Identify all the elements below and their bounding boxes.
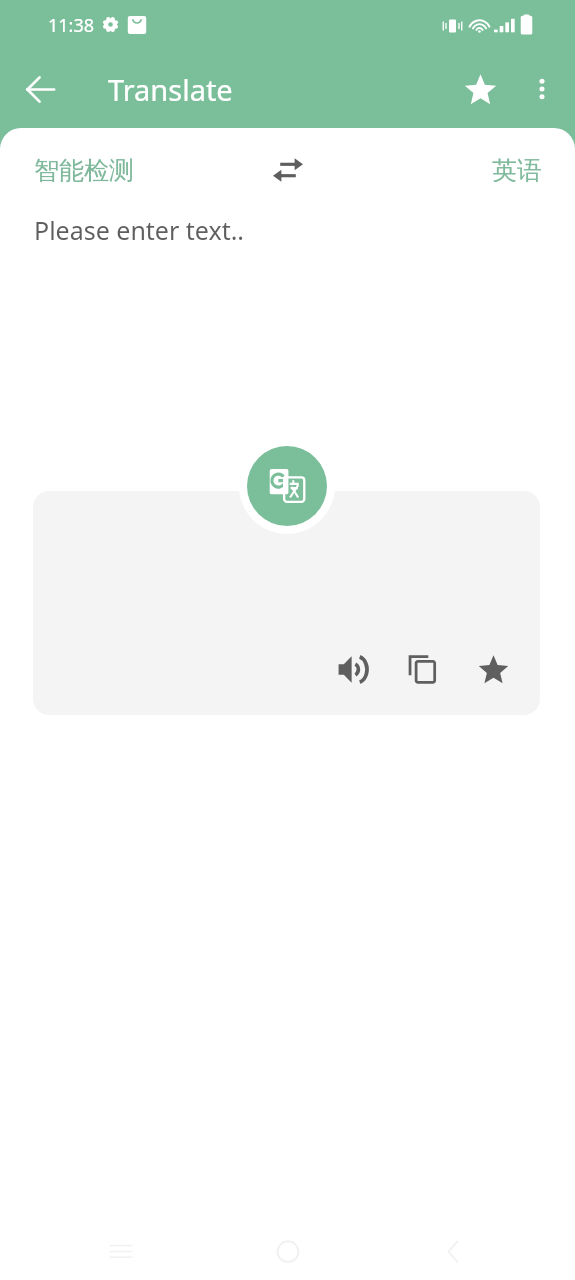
button[interactable]: Copy: [402, 649, 442, 689]
button[interactable]: Swap languages: [265, 147, 311, 193]
button[interactable]: Please enter text..: [16, 204, 559, 414]
staticText: 11:38: [48, 13, 95, 38]
button[interactable]: Listen: [33, 491, 540, 715]
staticText: Please enter text..: [34, 213, 245, 247]
button[interactable]: 英语: [492, 155, 542, 186]
button[interactable]: Listen: [332, 649, 372, 689]
staticText: 英语: [492, 155, 542, 186]
button[interactable]: 智能检测: [34, 155, 134, 186]
button[interactable]: Favorite: [473, 649, 513, 689]
button[interactable]: More options: [514, 61, 570, 117]
button[interactable]: Favorites: [452, 61, 508, 117]
button[interactable]: Back: [12, 61, 68, 117]
staticText: 智能检测: [34, 155, 134, 186]
button[interactable]: Translate: [247, 446, 327, 526]
staticText: Translate: [108, 70, 233, 109]
